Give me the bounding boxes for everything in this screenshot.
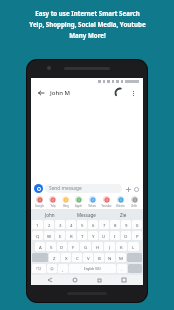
button[interactable]: W <box>44 231 54 240</box>
staticText: 1 <box>36 222 39 228</box>
button[interactable]: Youtube <box>99 196 113 208</box>
staticText: M <box>119 255 123 261</box>
button[interactable]: O <box>121 231 131 240</box>
button[interactable]: S <box>46 242 56 251</box>
button[interactable]: More options <box>128 88 138 98</box>
button[interactable]: N <box>105 253 115 262</box>
staticText: F <box>72 244 75 250</box>
button[interactable]: Key <box>127 253 142 262</box>
button[interactable]: D <box>57 242 67 251</box>
button[interactable]: 2 <box>44 220 54 229</box>
staticText: X <box>65 255 68 261</box>
button[interactable]: Back <box>45 275 55 285</box>
button[interactable]: F <box>68 242 79 251</box>
staticText: C <box>76 255 79 261</box>
staticText: J <box>109 244 111 250</box>
button[interactable]: K <box>116 242 127 251</box>
button[interactable]: Key <box>128 264 142 273</box>
button[interactable]: G <box>80 242 91 251</box>
button[interactable]: Q <box>32 231 43 240</box>
button[interactable]: Message <box>68 210 105 219</box>
button[interactable]: Google <box>33 196 46 208</box>
button[interactable]: E <box>55 231 65 240</box>
button[interactable]: 8 <box>110 220 120 229</box>
button[interactable]: U <box>99 231 109 240</box>
button[interactable]: Send <box>132 185 140 193</box>
staticText: Yelp <box>50 204 56 208</box>
button[interactable]: 5 <box>77 220 87 229</box>
button[interactable]: 0 <box>132 220 142 229</box>
button[interactable]: Yelp <box>46 196 59 208</box>
button[interactable]: Send message <box>45 184 122 193</box>
staticText: , <box>62 266 64 272</box>
button[interactable]: J <box>104 242 115 251</box>
button[interactable]: 9 <box>121 220 131 229</box>
staticText: . <box>121 266 123 272</box>
staticText: Google <box>35 204 44 208</box>
staticText: E <box>59 233 62 239</box>
button[interactable]: Search <box>34 184 43 193</box>
button[interactable]: , <box>58 264 68 273</box>
staticText: R <box>70 233 73 239</box>
button[interactable]: 1 <box>32 220 43 229</box>
button[interactable]: A <box>35 242 45 251</box>
button[interactable]: Call <box>115 88 125 98</box>
button[interactable]: Keyboard <box>119 275 129 285</box>
button[interactable]: 3 <box>55 220 65 229</box>
button[interactable]: B <box>94 253 104 262</box>
staticText: Message <box>77 212 96 218</box>
button[interactable]: ?12 <box>32 264 46 273</box>
button[interactable]: Yahoo <box>85 196 99 208</box>
staticText: 7 <box>103 222 106 228</box>
staticText: Many More! <box>69 31 106 39</box>
staticText: I <box>114 233 116 239</box>
staticText: H <box>96 244 100 250</box>
button[interactable]: L <box>128 242 139 251</box>
button[interactable]: Back <box>36 88 46 98</box>
staticText: W <box>47 233 51 239</box>
button[interactable]: C <box>72 253 82 262</box>
staticText: 4 <box>70 222 73 228</box>
button[interactable]: 6 <box>88 220 98 229</box>
button[interactable]: ☺ <box>47 264 57 273</box>
button[interactable]: 4 <box>66 220 76 229</box>
staticText: T <box>81 233 84 239</box>
button[interactable]: Y <box>88 231 98 240</box>
staticText: Q <box>36 233 40 239</box>
button[interactable]: V <box>83 253 93 262</box>
button[interactable]: Bing <box>59 196 72 208</box>
staticText: Bing <box>63 204 69 208</box>
button[interactable]: . <box>117 264 127 273</box>
button[interactable]: Bitcoin <box>113 196 127 208</box>
staticText: 6 <box>92 222 95 228</box>
button[interactable]: X <box>61 253 71 262</box>
button[interactable]: John <box>32 210 68 219</box>
staticText: L <box>132 244 135 250</box>
staticText: 9 <box>125 222 128 228</box>
staticText: Apple <box>75 204 82 208</box>
staticText: D <box>60 244 64 250</box>
button[interactable]: P <box>132 231 142 240</box>
staticText: 8 <box>114 222 117 228</box>
button[interactable]: T <box>77 231 87 240</box>
button[interactable]: Apple <box>72 196 85 208</box>
staticText: Zie <box>120 212 127 218</box>
button[interactable]: Zie <box>105 210 142 219</box>
staticText: N <box>108 255 112 261</box>
button[interactable]: R <box>66 231 76 240</box>
button[interactable]: English (US) <box>69 264 116 273</box>
button[interactable]: Add <box>124 185 132 193</box>
staticText: Youtube <box>101 204 112 208</box>
staticText: ?12 <box>36 267 42 271</box>
button[interactable]: H <box>92 242 103 251</box>
staticText: P <box>136 233 139 239</box>
button[interactable]: Z <box>49 253 60 262</box>
button[interactable]: M <box>116 253 126 262</box>
button[interactable]: Recents <box>94 275 104 285</box>
staticText: A <box>39 244 42 250</box>
button[interactable]: Zelle <box>127 196 141 208</box>
button[interactable]: 7 <box>99 220 109 229</box>
button[interactable]: I <box>110 231 120 240</box>
button[interactable]: Home <box>70 275 80 285</box>
